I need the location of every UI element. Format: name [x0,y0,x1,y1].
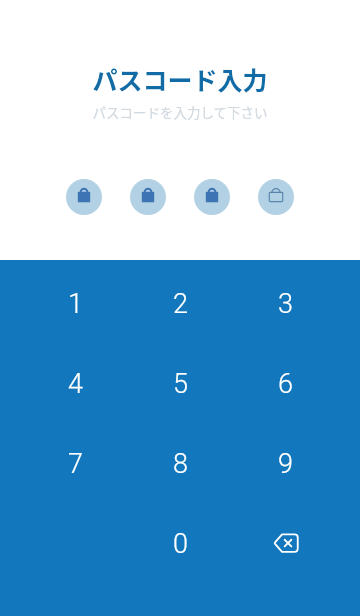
button[interactable]: 3 [233,264,338,344]
staticText: 1 [68,288,83,320]
staticText: 4 [68,368,83,400]
button[interactable]: Backspace [233,504,338,584]
staticText: 3 [278,288,293,320]
button[interactable]: 8 [128,424,233,504]
staticText: 5 [173,368,188,400]
button[interactable]: 4 [22,344,128,424]
staticText: パスコードを入力して下さい [92,102,268,122]
button[interactable]: 5 [128,344,233,424]
staticText: 0 [173,528,188,560]
button[interactable]: 0 [128,504,233,584]
button[interactable]: 6 [233,344,338,424]
button[interactable]: 1 [22,264,128,344]
staticText: パスコード入力 [92,61,268,93]
staticText: 7 [68,448,83,480]
staticText: 2 [173,288,188,320]
staticText: 6 [278,368,293,400]
button[interactable]: 7 [22,424,128,504]
button[interactable]: 9 [233,424,338,504]
staticText: 9 [278,448,293,480]
other: Backspace [271,529,301,559]
button[interactable]: 2 [128,264,233,344]
staticText: 8 [173,448,188,480]
